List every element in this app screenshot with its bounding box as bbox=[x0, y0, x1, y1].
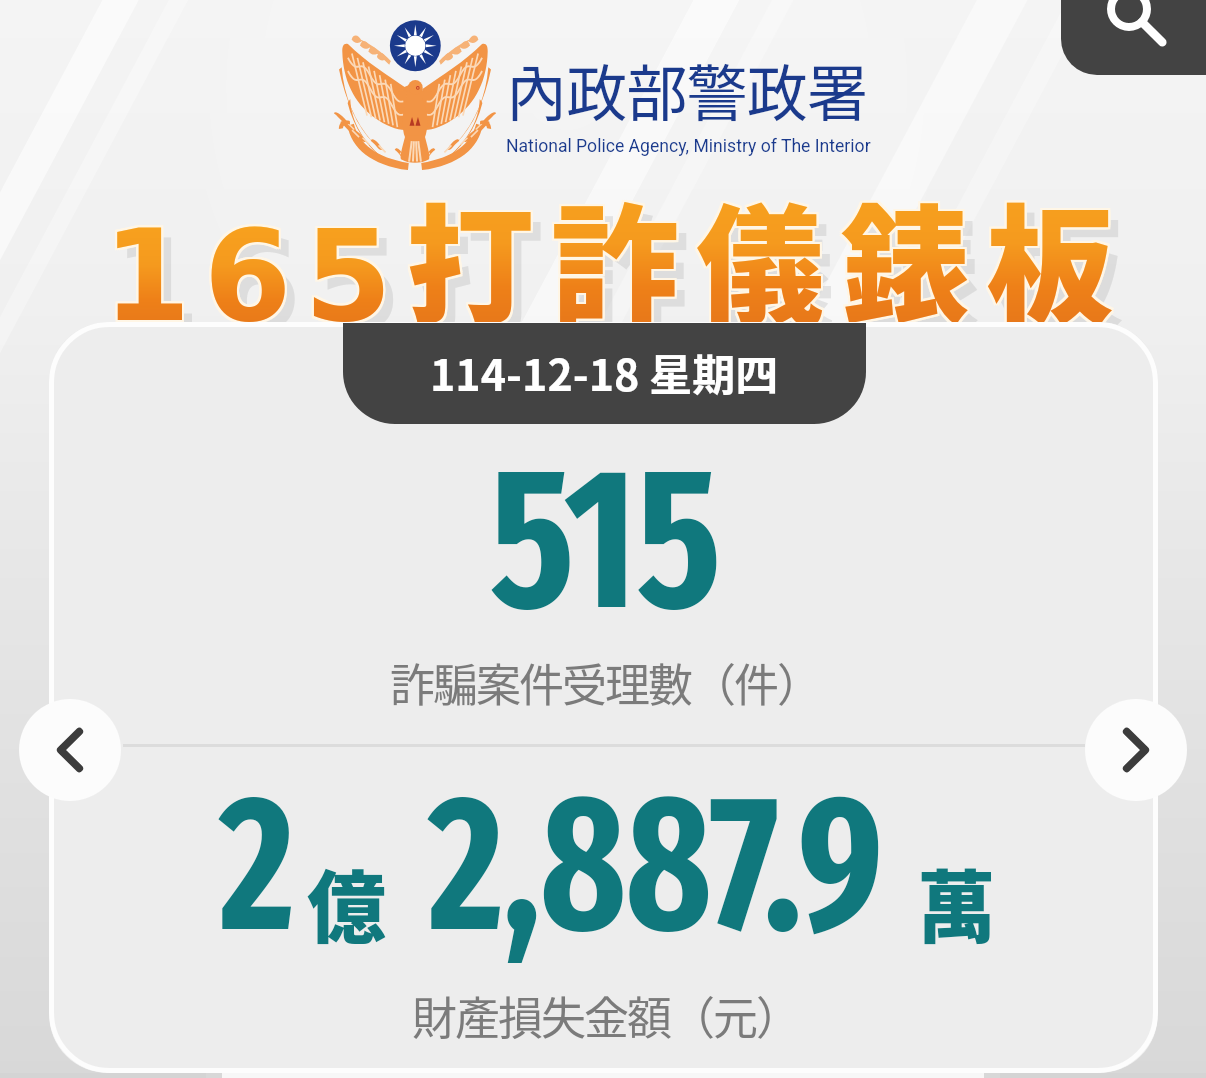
button[interactable]: Next bbox=[1085, 699, 1187, 801]
staticText: 打詐儀錶板 bbox=[408, 163, 1134, 348]
staticText: 打詐儀錶板 bbox=[416, 175, 1142, 360]
button[interactable]: 114-12-18 星期四 bbox=[343, 323, 866, 424]
staticText: 165 bbox=[103, 205, 406, 352]
staticText: 165 bbox=[105, 201, 408, 348]
staticText: 打詐儀錶板 bbox=[408, 167, 1134, 352]
staticText: 萬 bbox=[917, 845, 996, 959]
staticText: 打詐儀錶板 bbox=[406, 163, 1132, 348]
staticText: 打詐儀錶板 bbox=[404, 165, 1130, 350]
staticText: 打詐儀錶板 bbox=[406, 165, 1132, 350]
staticText: 165 bbox=[103, 203, 406, 350]
staticText: 165 bbox=[105, 205, 408, 352]
button[interactable]: Previous bbox=[19, 699, 121, 801]
button[interactable]: Daily fraud statistics card bbox=[49, 322, 1158, 1073]
staticText: 114-12-18 星期四 bbox=[430, 341, 779, 403]
button[interactable]: Search bbox=[1061, 0, 1206, 75]
staticText: 打詐儀錶板 bbox=[408, 165, 1134, 350]
staticText: 165 bbox=[103, 201, 406, 348]
staticText: 億 bbox=[307, 845, 386, 959]
staticText: 165 bbox=[113, 213, 416, 360]
staticText: 165 bbox=[105, 203, 408, 350]
staticText: 2,887.9 bbox=[429, 750, 883, 979]
staticText: 515 bbox=[490, 421, 722, 660]
staticText: 2 bbox=[220, 750, 294, 979]
staticText: 165 bbox=[101, 201, 404, 348]
staticText: 165 bbox=[101, 203, 404, 350]
staticText: 財產損失金額（元） bbox=[412, 983, 800, 1048]
staticText: 165 bbox=[101, 205, 404, 352]
staticText: 詐騙案件受理數（件） bbox=[390, 650, 821, 715]
staticText: 打詐儀錶板 bbox=[404, 167, 1130, 352]
staticText: 內政部警政署 bbox=[506, 45, 868, 133]
staticText: 打詐儀錶板 bbox=[406, 167, 1132, 352]
staticText: National Police Agency, Ministry of The … bbox=[506, 136, 871, 157]
staticText: 打詐儀錶板 bbox=[404, 163, 1130, 348]
